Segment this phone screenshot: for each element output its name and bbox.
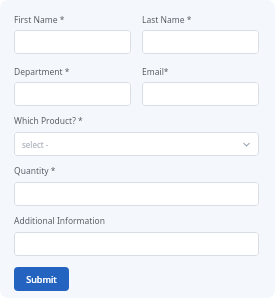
staticText: Department * — [14, 66, 70, 78]
button[interactable] — [142, 30, 259, 54]
button[interactable] — [14, 82, 131, 106]
staticText: Email* — [142, 66, 169, 78]
button[interactable] — [14, 30, 131, 54]
staticText: Submit — [26, 273, 57, 285]
staticText: select - — [22, 139, 49, 150]
other: Open product list — [242, 140, 251, 149]
button[interactable] — [14, 182, 259, 206]
staticText: Additional Information — [14, 215, 105, 227]
button[interactable]: Submit — [14, 267, 69, 291]
staticText: Quantity * — [14, 165, 56, 177]
button[interactable] — [14, 232, 259, 256]
button[interactable] — [142, 82, 259, 106]
staticText: Which Product? * — [14, 115, 83, 127]
button[interactable]: select - — [14, 132, 259, 156]
staticText: First Name * — [14, 14, 65, 26]
staticText: Last Name * — [142, 14, 192, 26]
